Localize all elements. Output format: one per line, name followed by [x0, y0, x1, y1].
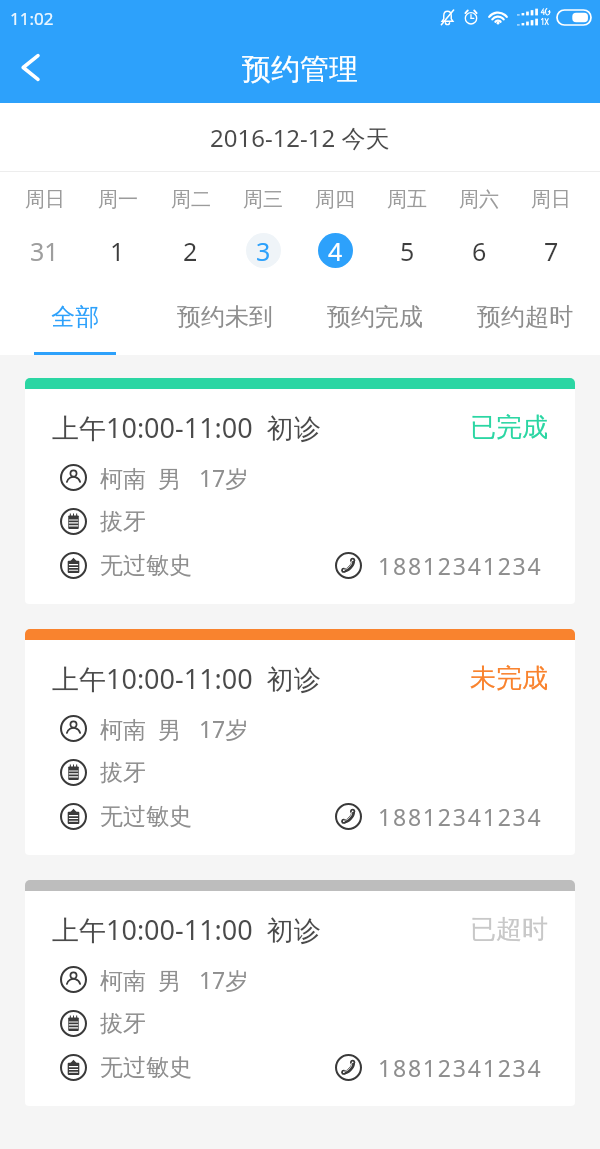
staticText: 无过敏史: [100, 802, 192, 831]
staticText: 5: [400, 234, 415, 268]
button[interactable]: 上午10:00-11:00 初诊: [25, 389, 575, 604]
staticText: 无过敏史: [100, 551, 192, 580]
staticText: 已超时: [470, 913, 548, 946]
staticText: 18812341234: [378, 1052, 543, 1083]
staticText: 拔牙: [100, 507, 146, 536]
staticText: 18812341234: [378, 550, 543, 581]
staticText: 周日: [531, 187, 571, 212]
staticText: 预约完成: [327, 302, 423, 332]
button[interactable]: 18812341234: [335, 1052, 575, 1083]
button[interactable]: 预约未到: [150, 284, 300, 355]
button[interactable]: 31: [8, 226, 81, 275]
staticText: 拔牙: [100, 758, 146, 787]
staticText: 7: [544, 234, 559, 268]
button[interactable]: 7: [515, 226, 587, 275]
staticText: 周一: [98, 187, 138, 212]
staticText: 周三: [243, 187, 283, 212]
staticText: 周日: [25, 187, 65, 212]
button[interactable]: 预约超时: [450, 284, 600, 355]
staticText: 6: [472, 234, 487, 268]
staticText: 11:02: [10, 7, 54, 30]
staticText: 周六: [459, 187, 499, 212]
button[interactable]: 上午10:00-11:00 初诊: [25, 640, 575, 855]
staticText: 2: [183, 234, 198, 268]
staticText: 拔牙: [100, 1009, 146, 1038]
staticText: 18812341234: [378, 801, 543, 832]
staticText: 预约超时: [477, 302, 573, 332]
staticText: 4: [328, 234, 343, 268]
staticText: 上午10:00-11:00 初诊: [52, 660, 321, 697]
button[interactable]: 4: [299, 226, 371, 275]
staticText: 全部: [51, 302, 99, 332]
staticText: 上午10:00-11:00 初诊: [52, 409, 321, 446]
staticText: 上午10:00-11:00 初诊: [52, 911, 321, 948]
staticText: 已完成: [470, 411, 548, 444]
staticText: 周五: [387, 187, 427, 212]
staticText: 31: [30, 234, 59, 268]
button[interactable]: 上午10:00-11:00 初诊: [25, 891, 575, 1106]
staticText: 柯南 男 17岁: [100, 462, 249, 493]
staticText: 无过敏史: [100, 1053, 192, 1082]
staticText: 预约管理: [242, 51, 358, 88]
button[interactable]: 2016-12-12 今天: [0, 103, 600, 172]
button[interactable]: 18812341234: [335, 801, 575, 832]
button[interactable]: 3: [227, 226, 299, 275]
button[interactable]: 18812341234: [335, 550, 575, 581]
button[interactable]: 6: [443, 226, 515, 275]
staticText: 3: [256, 234, 271, 268]
staticText: 柯南 男 17岁: [100, 964, 249, 995]
staticText: 柯南 男 17岁: [100, 713, 249, 744]
staticText: 未完成: [470, 662, 548, 695]
button[interactable]: 全部: [0, 284, 150, 355]
button[interactable]: 2: [154, 226, 227, 275]
staticText: 1: [110, 234, 125, 268]
button[interactable]: Back: [0, 36, 60, 103]
button[interactable]: 预约完成: [300, 284, 450, 355]
staticText: 预约未到: [177, 302, 273, 332]
staticText: 周二: [171, 187, 211, 212]
button[interactable]: 5: [371, 226, 443, 275]
staticText: 周四: [315, 187, 355, 212]
button[interactable]: 1: [81, 226, 154, 275]
staticText: 2016-12-12 今天: [210, 121, 390, 154]
